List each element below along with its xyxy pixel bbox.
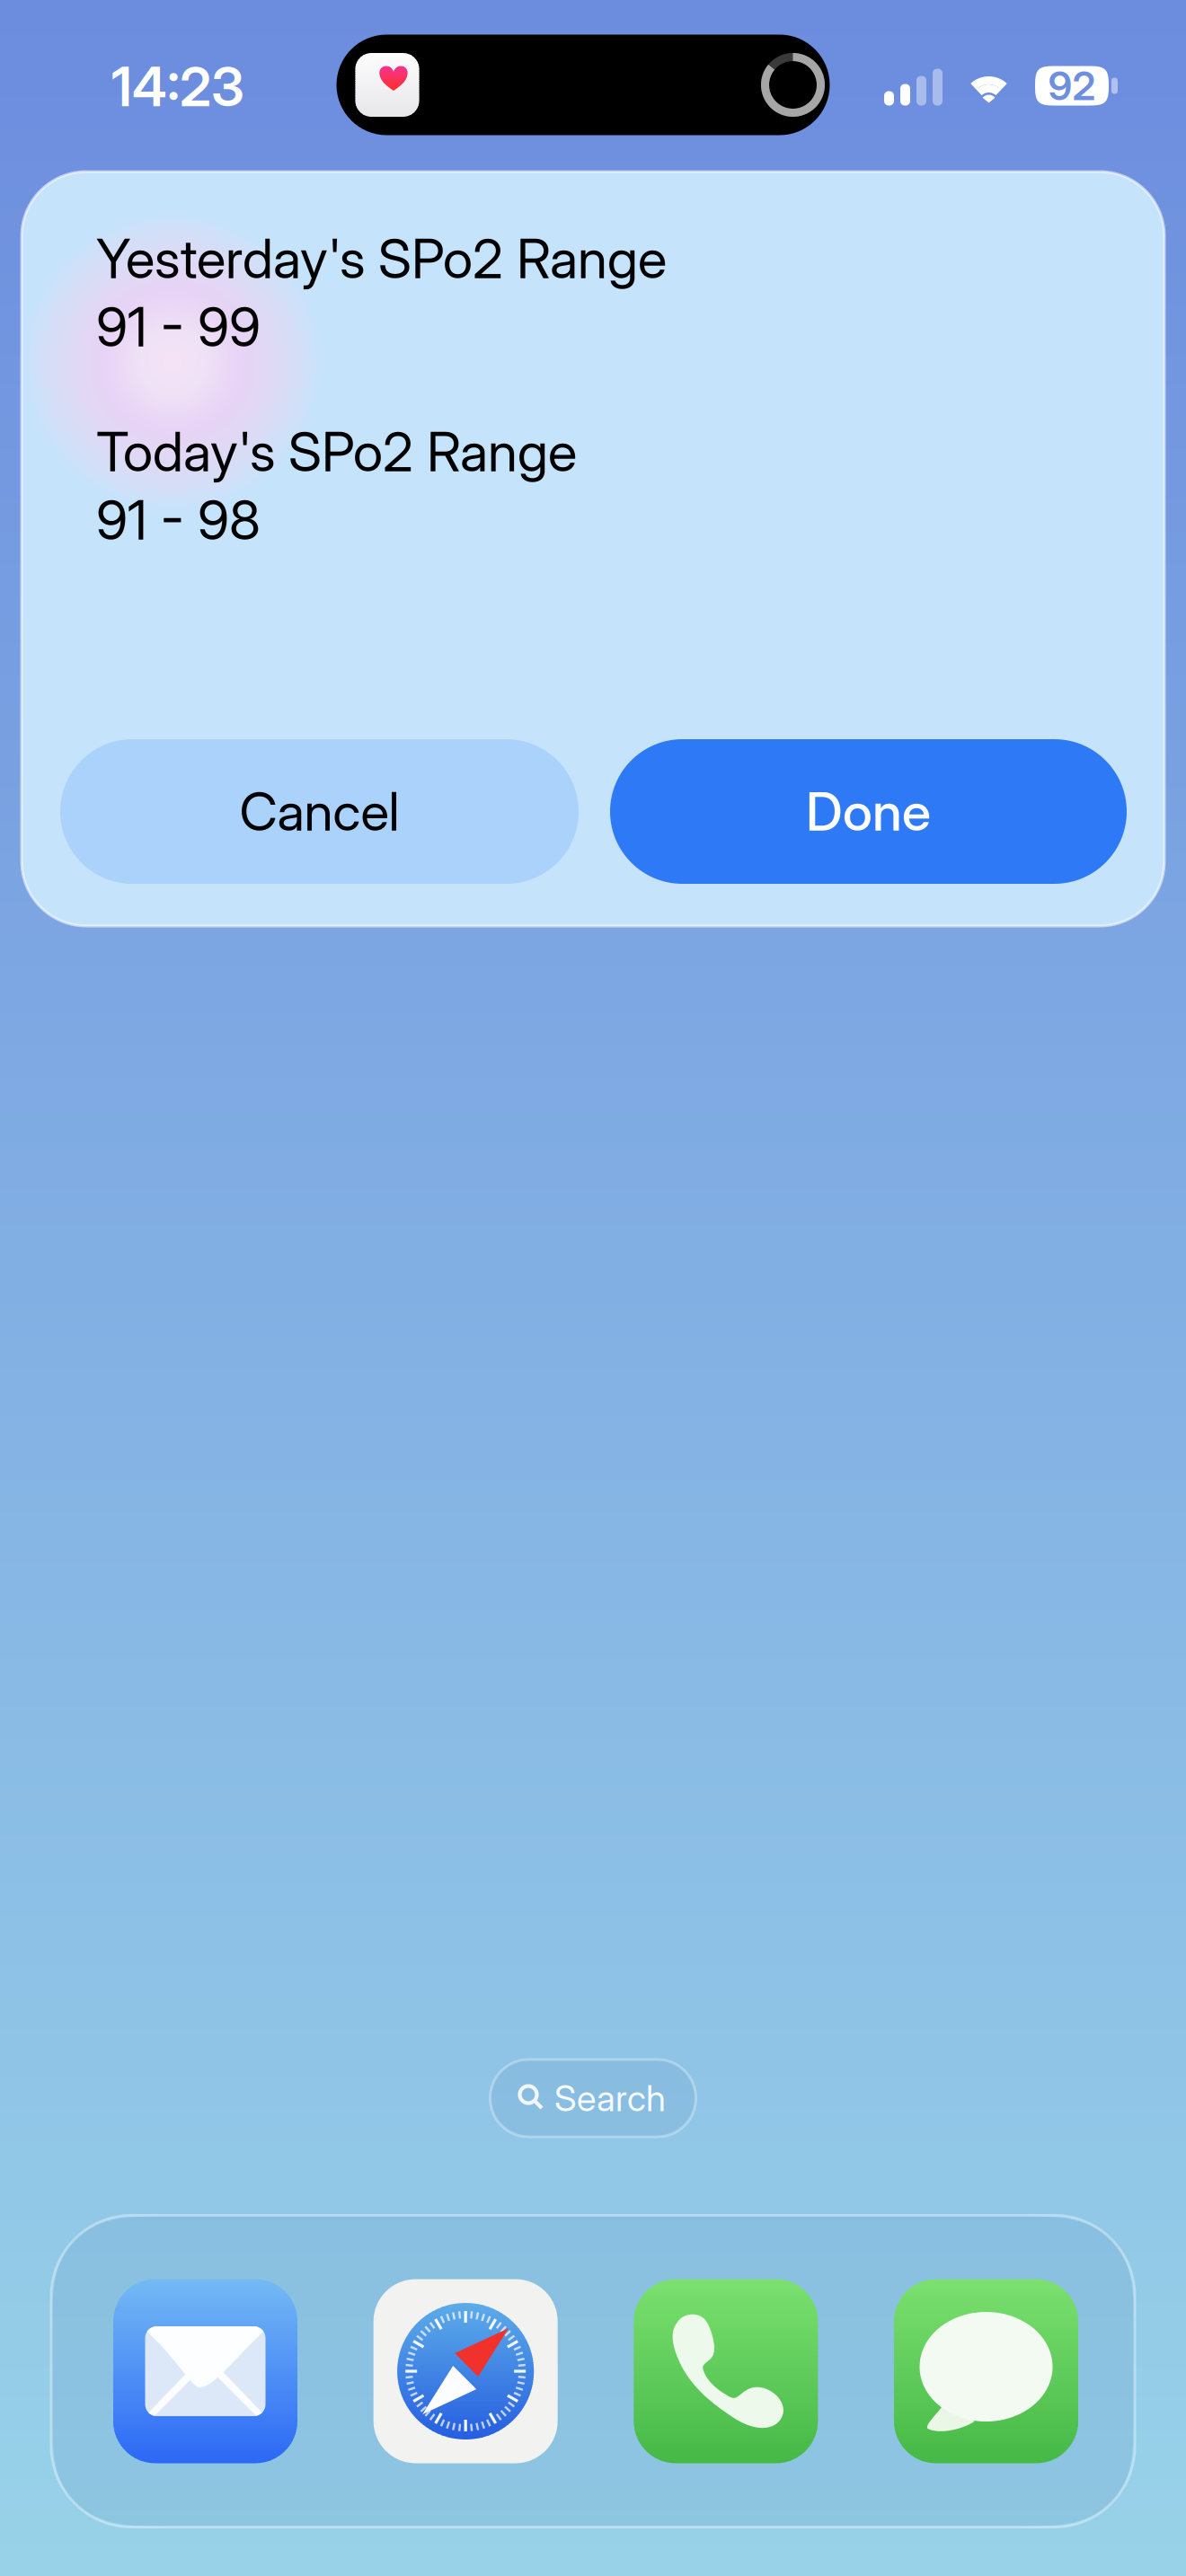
button[interactable]: Cancel (60, 739, 579, 884)
staticText: Today's SPo2 Range (96, 419, 577, 484)
button[interactable]: Phone (634, 2279, 818, 2463)
staticText: Yesterday's SPo2 Range (96, 226, 667, 291)
button[interactable]: Done (610, 739, 1127, 884)
staticText: Cancel (239, 780, 399, 843)
staticText: Done (806, 780, 931, 843)
button[interactable]: Mail (113, 2279, 297, 2463)
button[interactable]: Safari (374, 2279, 558, 2463)
staticText: Search (554, 2076, 666, 2120)
staticText: 14:23 (111, 54, 244, 119)
staticText: 91 - 99 (96, 294, 261, 360)
button[interactable]: Messages (894, 2279, 1078, 2463)
button[interactable]: Search (490, 2060, 696, 2137)
staticText: 91 - 98 (96, 487, 261, 553)
staticText: 92 (1048, 62, 1096, 110)
